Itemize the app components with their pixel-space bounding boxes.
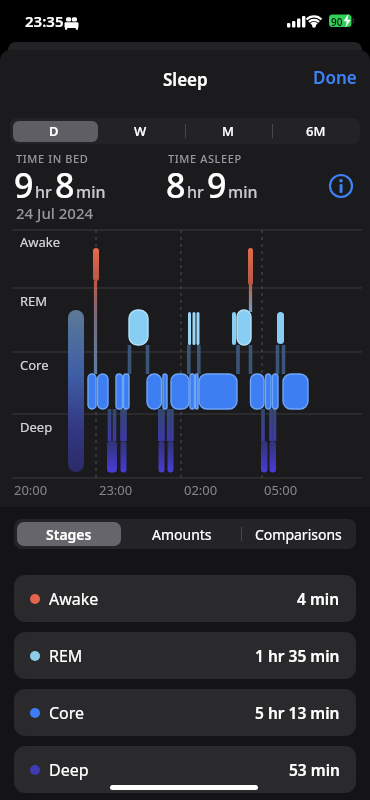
- staticText: hr: [187, 181, 204, 203]
- staticText: 6M: [306, 122, 326, 140]
- button[interactable]: Awake: [14, 575, 356, 622]
- staticText: 05:00: [264, 481, 298, 499]
- button[interactable]: 6M: [272, 118, 360, 144]
- staticText: 23:00: [99, 481, 133, 499]
- staticText: Comparisons: [255, 525, 342, 544]
- staticText: 5 hr 13 min: [255, 702, 340, 723]
- staticText: min: [76, 181, 106, 203]
- staticText: 1 hr 35 min: [255, 645, 340, 666]
- button[interactable]: REM: [14, 632, 356, 679]
- button[interactable]: D: [10, 118, 97, 144]
- staticText: 24 Jul 2024: [16, 203, 94, 223]
- button[interactable]: Stages: [14, 519, 124, 549]
- staticText: 23:35: [25, 11, 64, 31]
- staticText: Stages: [46, 525, 92, 544]
- button[interactable]: Done: [310, 62, 360, 92]
- staticText: 20:00: [14, 481, 48, 499]
- staticText: Awake: [20, 233, 61, 251]
- staticText: 9: [14, 162, 34, 208]
- staticText: D: [49, 122, 59, 140]
- staticText: 02:00: [184, 481, 218, 499]
- button[interactable]: [326, 171, 356, 201]
- staticText: M: [222, 122, 234, 140]
- staticText: 53 min: [289, 759, 340, 780]
- staticText: REM: [20, 292, 48, 310]
- staticText: W: [134, 122, 147, 140]
- staticText: 4 min: [297, 588, 340, 609]
- button[interactable]: Amounts: [124, 519, 240, 549]
- staticText: hr: [35, 181, 52, 203]
- staticText: REM: [49, 645, 83, 667]
- staticText: TIME ASLEEP: [168, 151, 242, 166]
- button[interactable]: M: [184, 118, 272, 144]
- staticText: Awake: [49, 588, 99, 610]
- staticText: Done: [313, 66, 357, 89]
- button[interactable]: Comparisons: [240, 519, 356, 549]
- staticText: Amounts: [152, 525, 212, 544]
- staticText: Deep: [20, 418, 53, 436]
- staticText: Sleep: [163, 68, 208, 91]
- staticText: TIME IN BED: [16, 151, 89, 166]
- staticText: Core: [20, 356, 49, 374]
- staticText: min: [228, 181, 258, 203]
- staticText: Deep: [49, 759, 89, 781]
- button[interactable]: Core: [14, 689, 356, 736]
- button[interactable]: W: [97, 118, 184, 144]
- staticText: Core: [49, 702, 85, 724]
- button[interactable]: Deep: [14, 746, 356, 793]
- staticText: 9: [207, 162, 227, 208]
- staticText: 90: [331, 15, 343, 29]
- staticText: 8: [55, 162, 75, 208]
- staticText: 8: [166, 162, 186, 208]
